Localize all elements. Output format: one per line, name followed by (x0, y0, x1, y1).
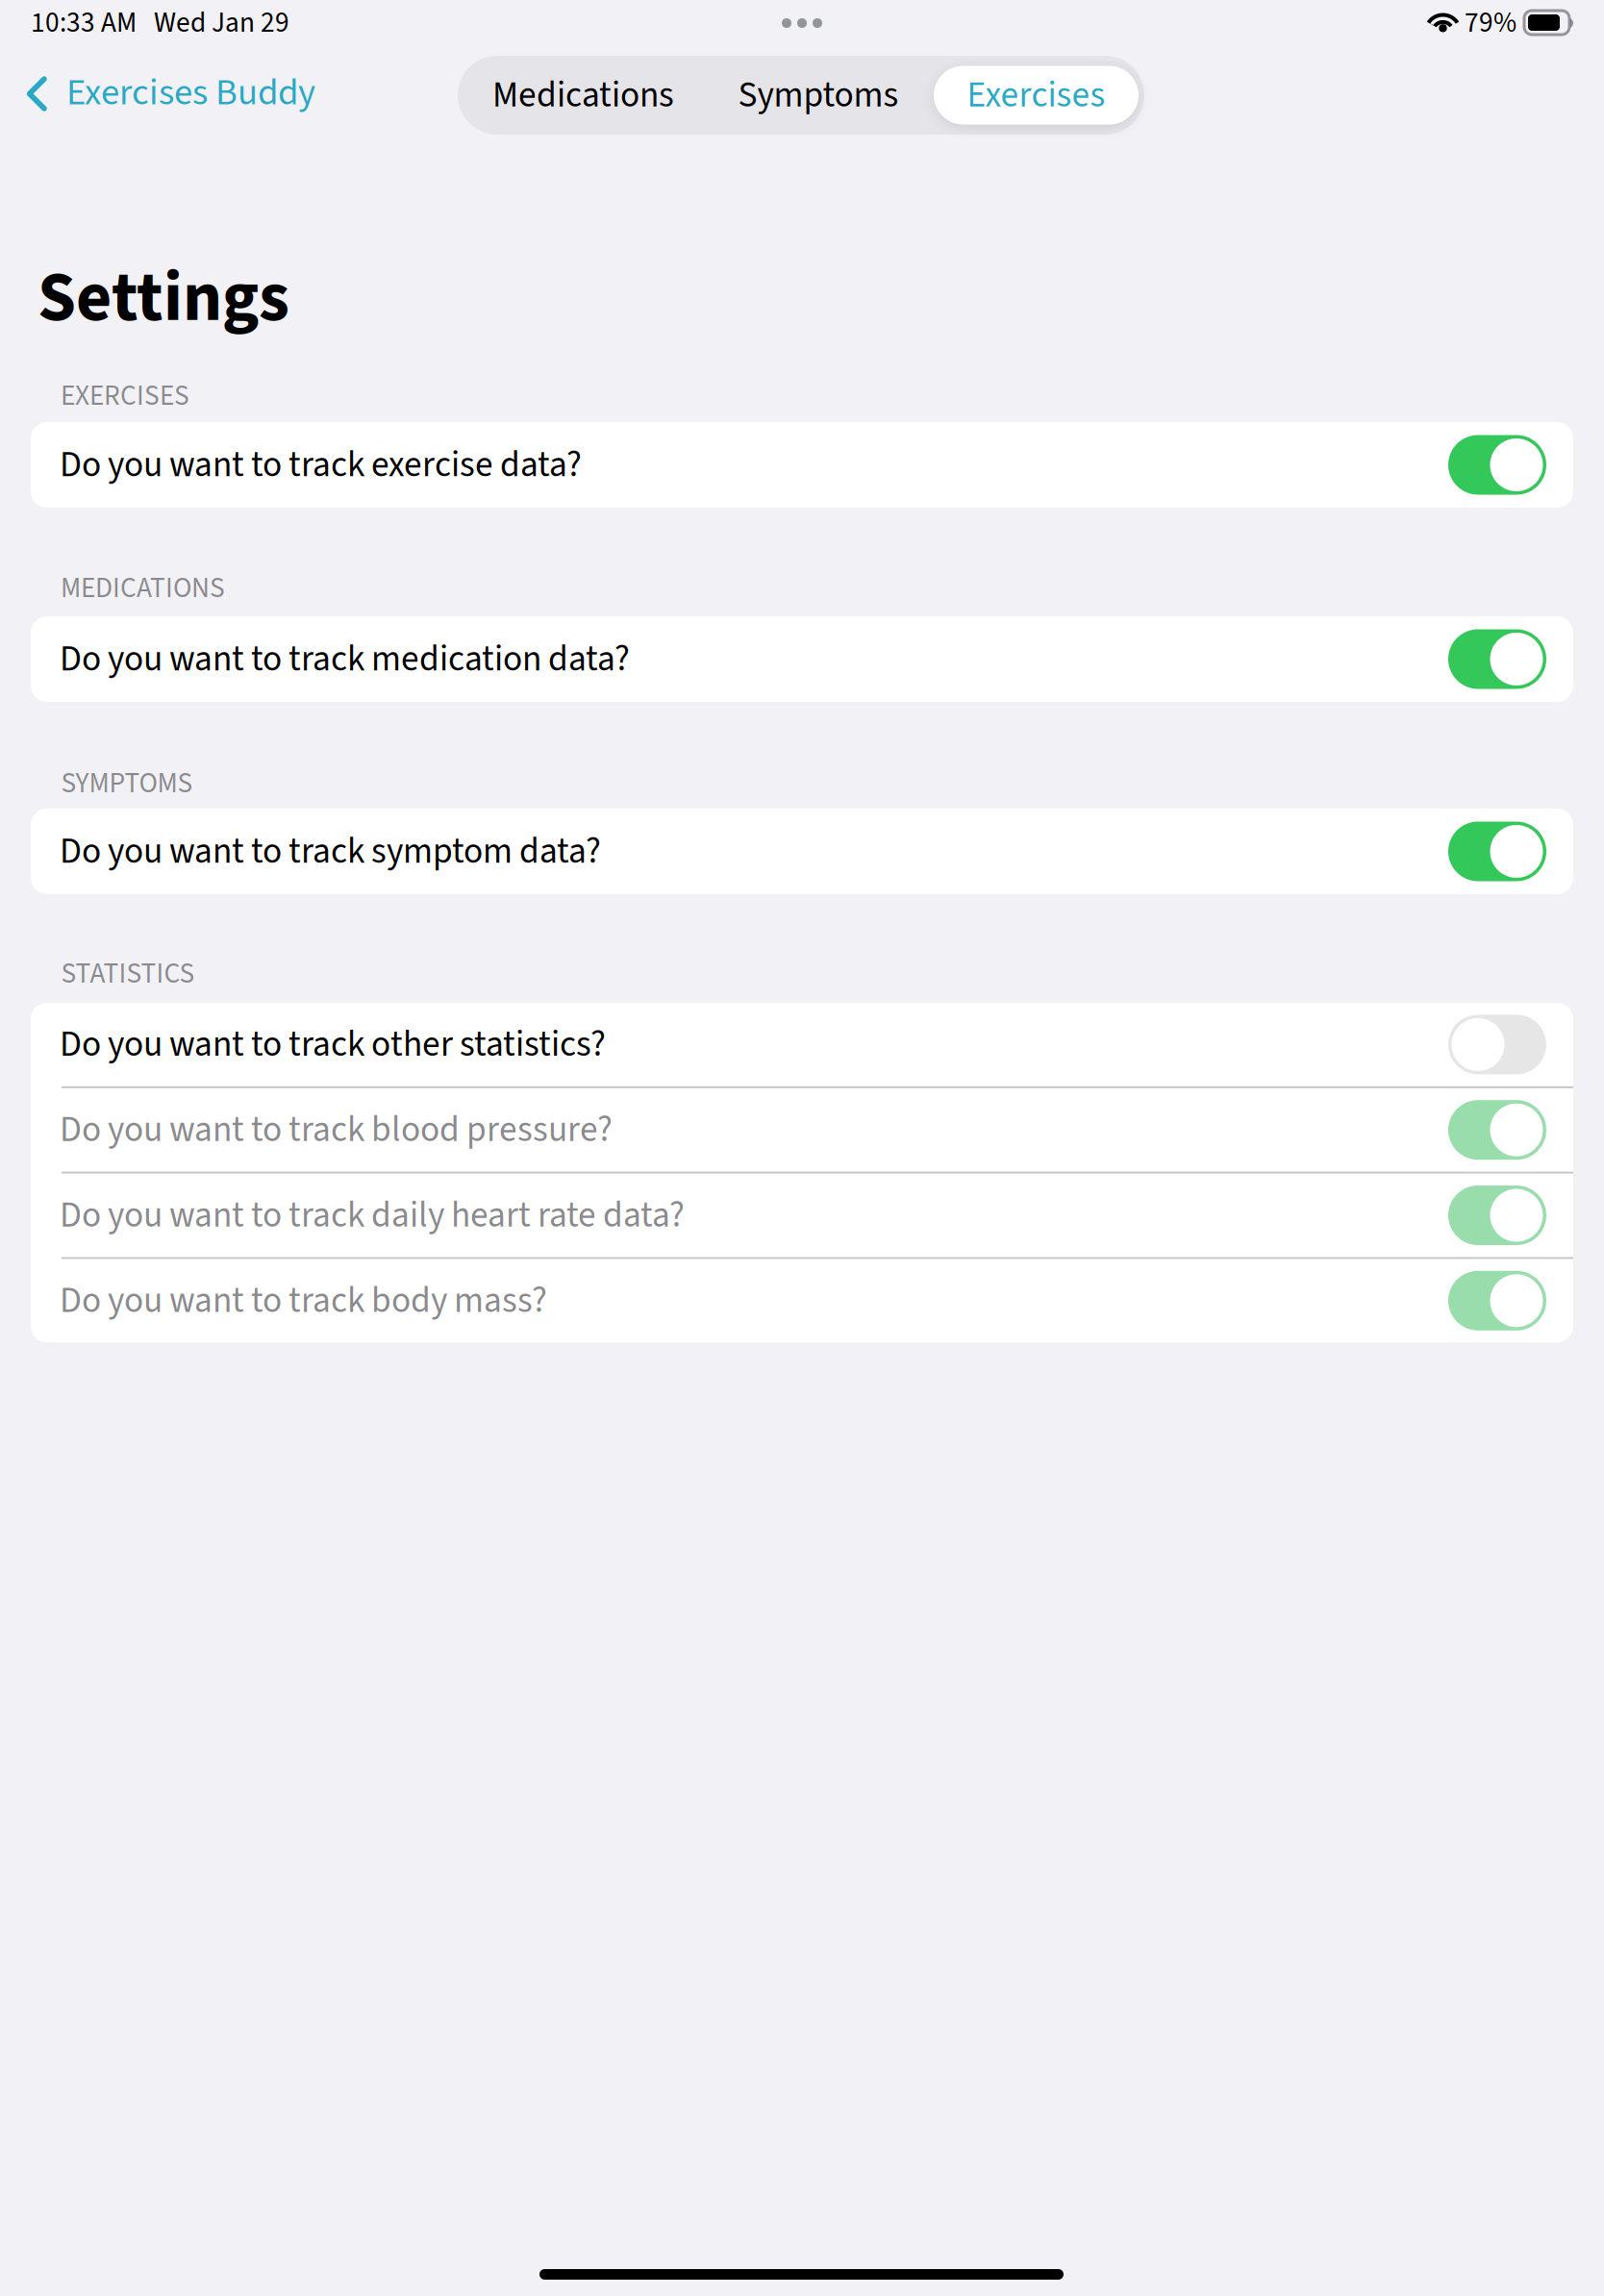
button[interactable]: Do you want to track other statistics? (31, 1003, 1573, 1086)
staticText: STATISTICS (61, 954, 195, 994)
staticText: Do you want to track medication data? (60, 634, 630, 685)
button[interactable]: Do you want to track medication data? (31, 616, 1573, 702)
button[interactable]: Medications (458, 56, 709, 135)
staticText: Symptoms (738, 70, 899, 121)
staticText: Wed Jan 29 (137, 3, 289, 43)
staticText: Do you want to track other statistics? (60, 1019, 606, 1070)
staticText: Exercises (967, 70, 1105, 121)
button[interactable]: Do you want to track blood pressure? (31, 1088, 1573, 1172)
staticText: Do you want to track symptom data? (60, 826, 601, 877)
staticText: Medications (492, 70, 674, 121)
button[interactable]: Do you want to track symptom data? (31, 809, 1573, 894)
staticText: Do you want to track daily heart rate da… (60, 1190, 685, 1241)
staticText: EXERCISES (61, 376, 189, 416)
staticText: SYMPTOMS (61, 763, 193, 804)
staticText: MEDICATIONS (61, 568, 225, 608)
staticText: 79% (1465, 3, 1516, 43)
button[interactable]: Do you want to track daily heart rate da… (31, 1174, 1573, 1257)
button[interactable]: Back to Exercises Buddy (25, 66, 315, 121)
button[interactable]: Exercises (928, 56, 1144, 135)
button[interactable]: Do you want to track body mass? (31, 1259, 1573, 1342)
staticText: Do you want to track exercise data? (60, 439, 582, 490)
staticText: Exercises Buddy (66, 66, 315, 119)
staticText: 10:33 AM (31, 3, 137, 43)
staticText: Do you want to track blood pressure? (60, 1104, 613, 1155)
button[interactable]: Symptoms (709, 56, 928, 135)
staticText: Do you want to track body mass? (60, 1275, 547, 1326)
staticText: Settings (38, 249, 289, 348)
button[interactable]: Do you want to track exercise data? (31, 422, 1573, 508)
